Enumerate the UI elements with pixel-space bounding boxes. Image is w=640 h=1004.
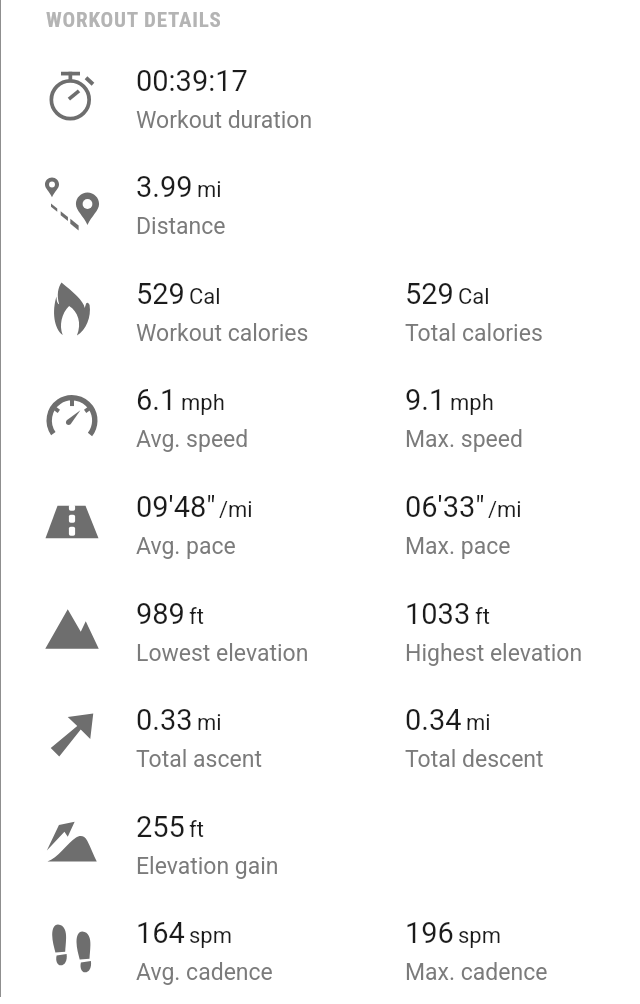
staticText: Avg. cadence bbox=[136, 959, 273, 986]
staticText: 1033 bbox=[405, 597, 471, 631]
staticText: 255 bbox=[136, 810, 185, 844]
staticText: 09'48" bbox=[136, 490, 216, 524]
staticText: Total calories bbox=[405, 320, 543, 347]
other: Elevation bbox=[42, 599, 102, 659]
staticText: ft bbox=[189, 604, 204, 630]
staticText: Total ascent bbox=[136, 746, 262, 773]
button[interactable]: 1033 bbox=[405, 597, 640, 673]
staticText: ft bbox=[475, 604, 490, 630]
staticText: WORKOUT DETAILS bbox=[46, 8, 222, 33]
staticText: /mi bbox=[219, 497, 253, 523]
button[interactable]: 529 bbox=[136, 277, 386, 353]
staticText: 00:39:17 bbox=[136, 64, 248, 98]
other: Calories bbox=[42, 279, 102, 339]
button[interactable]: 529 bbox=[405, 277, 640, 353]
button[interactable]: 3.99 bbox=[136, 170, 386, 246]
staticText: 196 bbox=[405, 916, 454, 950]
staticText: /mi bbox=[488, 497, 522, 523]
staticText: Cal bbox=[189, 284, 221, 310]
staticText: Lowest elevation bbox=[136, 640, 309, 667]
staticText: mph bbox=[181, 390, 225, 416]
staticText: Workout duration bbox=[136, 107, 313, 134]
staticText: 9.1 bbox=[405, 383, 446, 417]
staticText: 0.33 bbox=[136, 703, 193, 737]
staticText: Avg. speed bbox=[136, 426, 249, 453]
staticText: Highest elevation bbox=[405, 640, 583, 667]
button[interactable]: 989 bbox=[136, 597, 386, 673]
staticText: Distance bbox=[136, 213, 226, 240]
staticText: mi bbox=[197, 710, 222, 736]
staticText: 529 bbox=[136, 277, 185, 311]
staticText: mi bbox=[197, 177, 222, 203]
staticText: mph bbox=[450, 390, 494, 416]
staticText: 6.1 bbox=[136, 383, 177, 417]
other: Elevation gain bbox=[42, 812, 102, 872]
button[interactable]: 6.1 bbox=[136, 383, 386, 459]
other: Distance bbox=[42, 172, 102, 232]
button[interactable]: 0.33 bbox=[136, 703, 386, 779]
other: Ascent bbox=[42, 705, 102, 765]
staticText: 989 bbox=[136, 597, 185, 631]
staticText: Total descent bbox=[405, 746, 544, 773]
staticText: spm bbox=[189, 923, 233, 949]
button[interactable]: 0.34 bbox=[405, 703, 640, 779]
staticText: Cal bbox=[458, 284, 490, 310]
staticText: Max. speed bbox=[405, 426, 523, 453]
staticText: Max. cadence bbox=[405, 959, 548, 986]
other: Pace bbox=[42, 492, 102, 552]
staticText: 0.34 bbox=[405, 703, 462, 737]
staticText: 3.99 bbox=[136, 170, 193, 204]
other: Speed bbox=[42, 385, 102, 445]
staticText: 164 bbox=[136, 916, 185, 950]
other: Cadence bbox=[42, 918, 102, 978]
button[interactable]: 09'48" bbox=[136, 490, 386, 566]
staticText: 06'33" bbox=[405, 490, 485, 524]
staticText: mi bbox=[466, 710, 491, 736]
button[interactable]: 196 bbox=[405, 916, 640, 992]
staticText: Elevation gain bbox=[136, 853, 279, 880]
staticText: ft bbox=[189, 817, 204, 843]
staticText: Max. pace bbox=[405, 533, 511, 560]
button[interactable]: 9.1 bbox=[405, 383, 640, 459]
staticText: Workout calories bbox=[136, 320, 309, 347]
button[interactable]: 255 bbox=[136, 810, 386, 886]
other: Workout duration bbox=[42, 66, 102, 126]
staticText: spm bbox=[458, 923, 502, 949]
button[interactable]: 06'33" bbox=[405, 490, 640, 566]
staticText: Avg. pace bbox=[136, 533, 236, 560]
button[interactable]: 164 bbox=[136, 916, 386, 992]
staticText: 529 bbox=[405, 277, 454, 311]
button[interactable]: 00:39:17 bbox=[136, 64, 386, 140]
